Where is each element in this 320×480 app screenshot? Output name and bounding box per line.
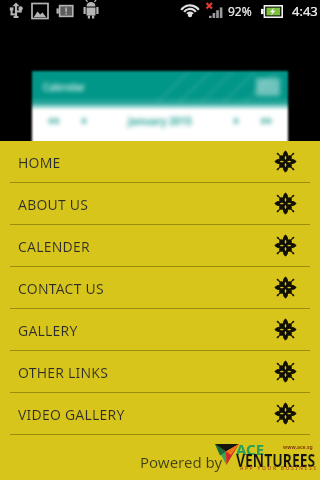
staticText: HOME bbox=[18, 152, 61, 172]
button[interactable]: Calendar options bbox=[256, 78, 280, 96]
staticText: Calendar bbox=[43, 80, 86, 94]
staticText: OTHER LINKS bbox=[18, 362, 108, 382]
staticText: Powered by bbox=[140, 452, 223, 472]
button[interactable]: ABOUT US bbox=[0, 183, 320, 224]
staticText: VIDEO GALLERY bbox=[18, 404, 125, 424]
button[interactable]: OTHER LINKS bbox=[0, 351, 320, 392]
button[interactable]: Last page bbox=[260, 115, 272, 127]
button[interactable]: GALLERY bbox=[0, 309, 320, 350]
button[interactable]: Next month bbox=[232, 115, 239, 127]
staticText: CONTACT US bbox=[18, 278, 104, 298]
button[interactable]: HOME bbox=[0, 141, 320, 182]
button[interactable]: CALENDER bbox=[0, 225, 320, 266]
button[interactable]: CONTACT US bbox=[0, 267, 320, 308]
staticText: 92% bbox=[228, 3, 252, 19]
staticText: GALLERY bbox=[18, 320, 78, 340]
button[interactable]: First page bbox=[48, 115, 60, 127]
staticText: www.ace.sg bbox=[283, 444, 313, 451]
staticText: CALENDER bbox=[18, 236, 90, 256]
staticText: ACE bbox=[236, 439, 265, 459]
button[interactable]: VIDEO GALLERY bbox=[0, 393, 320, 434]
button[interactable]: Previous month bbox=[81, 115, 88, 127]
staticText: 4:43 bbox=[292, 2, 318, 20]
staticText: January 2015 bbox=[128, 114, 192, 128]
staticText: ABOUT US bbox=[18, 194, 89, 214]
staticText: APP YOUR BUSINESS bbox=[240, 465, 318, 472]
staticText: VENTUREES bbox=[236, 449, 315, 472]
